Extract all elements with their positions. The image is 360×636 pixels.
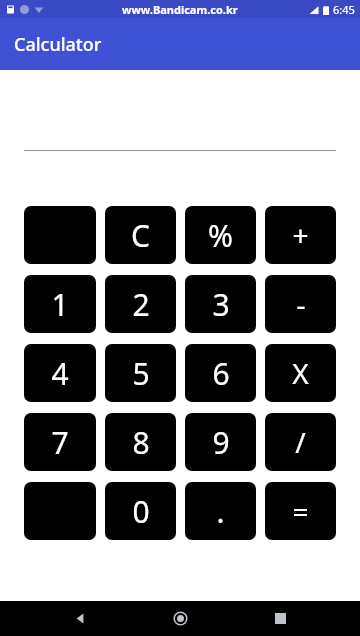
staticText: 3 [212,284,230,325]
button[interactable]: 8 [105,413,176,471]
staticText: . [216,491,225,532]
button[interactable]: 5 [105,344,176,402]
button[interactable]: Blank key [24,206,96,264]
staticText: - [296,285,306,323]
staticText: 9 [212,422,230,463]
button[interactable]: / [265,413,336,471]
button[interactable]: X [265,344,336,402]
staticText: / [295,423,306,461]
staticText: 2 [132,284,150,325]
button[interactable]: 1 [24,275,96,333]
staticText: X [292,354,309,392]
button[interactable]: Recent apps [260,601,300,636]
button[interactable]: 7 [24,413,96,471]
button[interactable]: = [265,482,336,540]
staticText: Calculator [14,32,102,57]
staticText: = [292,492,309,530]
staticText: 0 [132,491,150,532]
button[interactable]: C [105,206,176,264]
staticText: 6:45 [333,2,355,17]
staticText: 1 [51,284,69,325]
staticText: 7 [51,422,69,463]
button[interactable]: 3 [185,275,256,333]
button[interactable]: Home [160,601,200,636]
staticText: 5 [132,353,150,394]
button[interactable]: 0 [105,482,176,540]
staticText: % [208,215,233,256]
button[interactable]: + [265,206,336,264]
button[interactable]: 9 [185,413,256,471]
staticText: 8 [132,422,150,463]
button[interactable]: Blank key [24,482,96,540]
button[interactable]: . [185,482,256,540]
button[interactable]: - [265,275,336,333]
button[interactable]: 2 [105,275,176,333]
button[interactable]: % [185,206,256,264]
staticText: + [292,216,309,254]
staticText: www.Bandicam.co.kr [122,2,238,17]
button[interactable]: 6 [185,344,256,402]
staticText: 4 [51,353,69,394]
staticText: 6 [212,353,230,394]
staticText: C [131,215,150,256]
button[interactable]: 4 [24,344,96,402]
button[interactable]: Back [60,601,100,636]
